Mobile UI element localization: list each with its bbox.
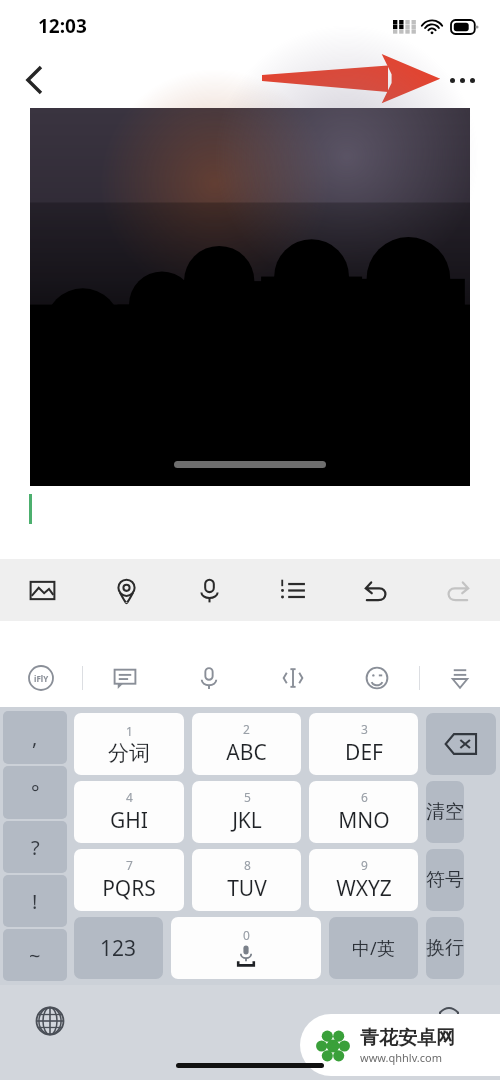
button[interactable]: 4 [74, 781, 184, 843]
button[interactable]: 6 [309, 781, 418, 843]
staticText: PQRS [102, 874, 156, 903]
button[interactable]: 2 [192, 713, 301, 775]
button[interactable]: 3 [309, 713, 418, 775]
button[interactable]: ~ [3, 929, 67, 981]
button[interactable]: 9 [309, 849, 418, 911]
button[interactable]: 5 [192, 781, 301, 843]
button[interactable]: ? [3, 821, 67, 873]
button[interactable]: 换行 [426, 917, 464, 979]
staticText: WXYZ [336, 874, 392, 903]
staticText: MNO [338, 806, 390, 835]
staticText: 9 [361, 857, 368, 873]
button[interactable]: 清空 [426, 781, 464, 843]
button[interactable]: ° [3, 766, 67, 819]
staticText: DEF [345, 738, 383, 767]
staticText: TUV [227, 874, 267, 903]
button[interactable]: Messages [83, 649, 167, 707]
staticText: 5 [244, 789, 251, 805]
staticText: ° [31, 779, 40, 806]
button[interactable]: 1 [74, 713, 184, 775]
button[interactable]: Hide keyboard [420, 649, 500, 707]
staticText: 12:03 [38, 13, 87, 39]
staticText: www.qhhlv.com [360, 1050, 442, 1065]
staticText: ? [31, 834, 40, 861]
staticText: JKL [232, 806, 262, 835]
button[interactable]: Redo [417, 559, 500, 621]
button[interactable]: Ordered list [251, 559, 334, 621]
staticText: GHI [110, 806, 148, 835]
staticText: 青花安卓网 [360, 1026, 455, 1050]
staticText: iFlY [34, 673, 49, 684]
staticText: 123 [100, 934, 137, 963]
staticText: 中/英 [352, 936, 395, 961]
staticText: 3 [361, 721, 368, 737]
staticText: ~ [29, 942, 41, 969]
button[interactable]: 符号 [426, 849, 464, 911]
staticText: 换行 [426, 936, 464, 960]
button[interactable]: Space, voice input [171, 917, 321, 979]
button[interactable]: Insert image [0, 559, 84, 621]
staticText: 清空 [426, 800, 464, 824]
button[interactable]: 7 [74, 849, 184, 911]
button[interactable]: Voice input [167, 649, 251, 707]
staticText: 7 [126, 857, 133, 873]
staticText: 2 [243, 721, 250, 737]
button[interactable]: 123 [74, 917, 163, 979]
button[interactable]: Emoji [335, 649, 419, 707]
button[interactable]: Back [10, 56, 58, 104]
button[interactable]: Cursor control [251, 649, 335, 707]
staticText: ! [32, 888, 38, 915]
button[interactable]: Undo [334, 559, 417, 621]
button[interactable]: Voice input [168, 559, 251, 621]
button[interactable]: 中/英 [329, 917, 418, 979]
staticText: 1 [126, 723, 133, 739]
staticText: , [32, 724, 38, 751]
button[interactable]: Switch language [28, 999, 72, 1043]
button[interactable]: ! [3, 875, 67, 927]
button[interactable]: Backspace [426, 713, 496, 775]
staticText: 0 [243, 927, 250, 943]
staticText: 4 [126, 789, 133, 805]
staticText: 6 [361, 789, 368, 805]
staticText: 分词 [108, 740, 150, 766]
staticText: 符号 [426, 868, 464, 892]
button[interactable]: Location [84, 559, 168, 621]
button[interactable]: , [3, 711, 67, 764]
staticText: ABC [226, 738, 267, 767]
button[interactable]: Input method [0, 649, 82, 707]
button[interactable]: 8 [192, 849, 301, 911]
button[interactable]: More options [436, 54, 488, 106]
staticText: 8 [244, 857, 251, 873]
